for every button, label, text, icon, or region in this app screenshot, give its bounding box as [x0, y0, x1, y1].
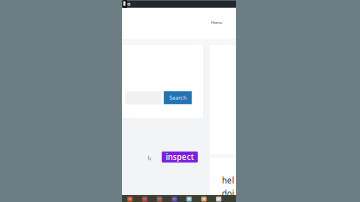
staticText: doi: [222, 188, 234, 199]
button[interactable]: Globe: [182, 196, 196, 202]
button[interactable]: Search: [164, 91, 192, 104]
button[interactable]: Files: [122, 196, 137, 202]
staticText: hel: [222, 175, 234, 186]
button[interactable]: inspect: [162, 151, 198, 162]
button[interactable]: Notes: [211, 196, 226, 202]
staticText: Search: [169, 94, 186, 101]
button[interactable]: Browser: [152, 196, 167, 202]
staticText: Home: [211, 20, 222, 25]
button[interactable]: Terminal: [196, 196, 211, 202]
button[interactable]: Editor: [167, 196, 182, 202]
button[interactable]: Site: [127, 2, 131, 6]
button[interactable]: Browser tab: [123, 1, 125, 6]
staticText: inspect: [166, 152, 194, 162]
button[interactable]: Chrome: [137, 196, 152, 202]
button[interactable]: Home: [210, 19, 223, 25]
